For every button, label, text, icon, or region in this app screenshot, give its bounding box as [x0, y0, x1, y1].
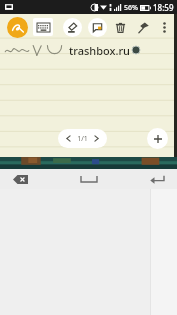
- button[interactable]: Highlighter: [63, 18, 82, 37]
- button[interactable]: Pen tool: [7, 17, 28, 38]
- button[interactable]: 1/1: [58, 129, 107, 148]
- button[interactable]: Space: [74, 172, 104, 186]
- button[interactable]: Delete: [111, 18, 129, 36]
- staticText: 56%: [124, 3, 138, 13]
- button[interactable]: Add page: [147, 128, 168, 149]
- button[interactable]: Enter: [147, 172, 167, 186]
- staticText: trashbox.ru: [69, 43, 131, 58]
- button[interactable]: Keyboard: [33, 18, 53, 36]
- staticText: 18:59: [153, 2, 174, 13]
- button[interactable]: More options: [156, 19, 172, 35]
- button[interactable]: Pin note: [134, 18, 152, 36]
- button[interactable]: Add sticker: [88, 18, 107, 37]
- button[interactable]: Backspace: [10, 172, 30, 186]
- staticText: 1/1: [77, 134, 88, 144]
